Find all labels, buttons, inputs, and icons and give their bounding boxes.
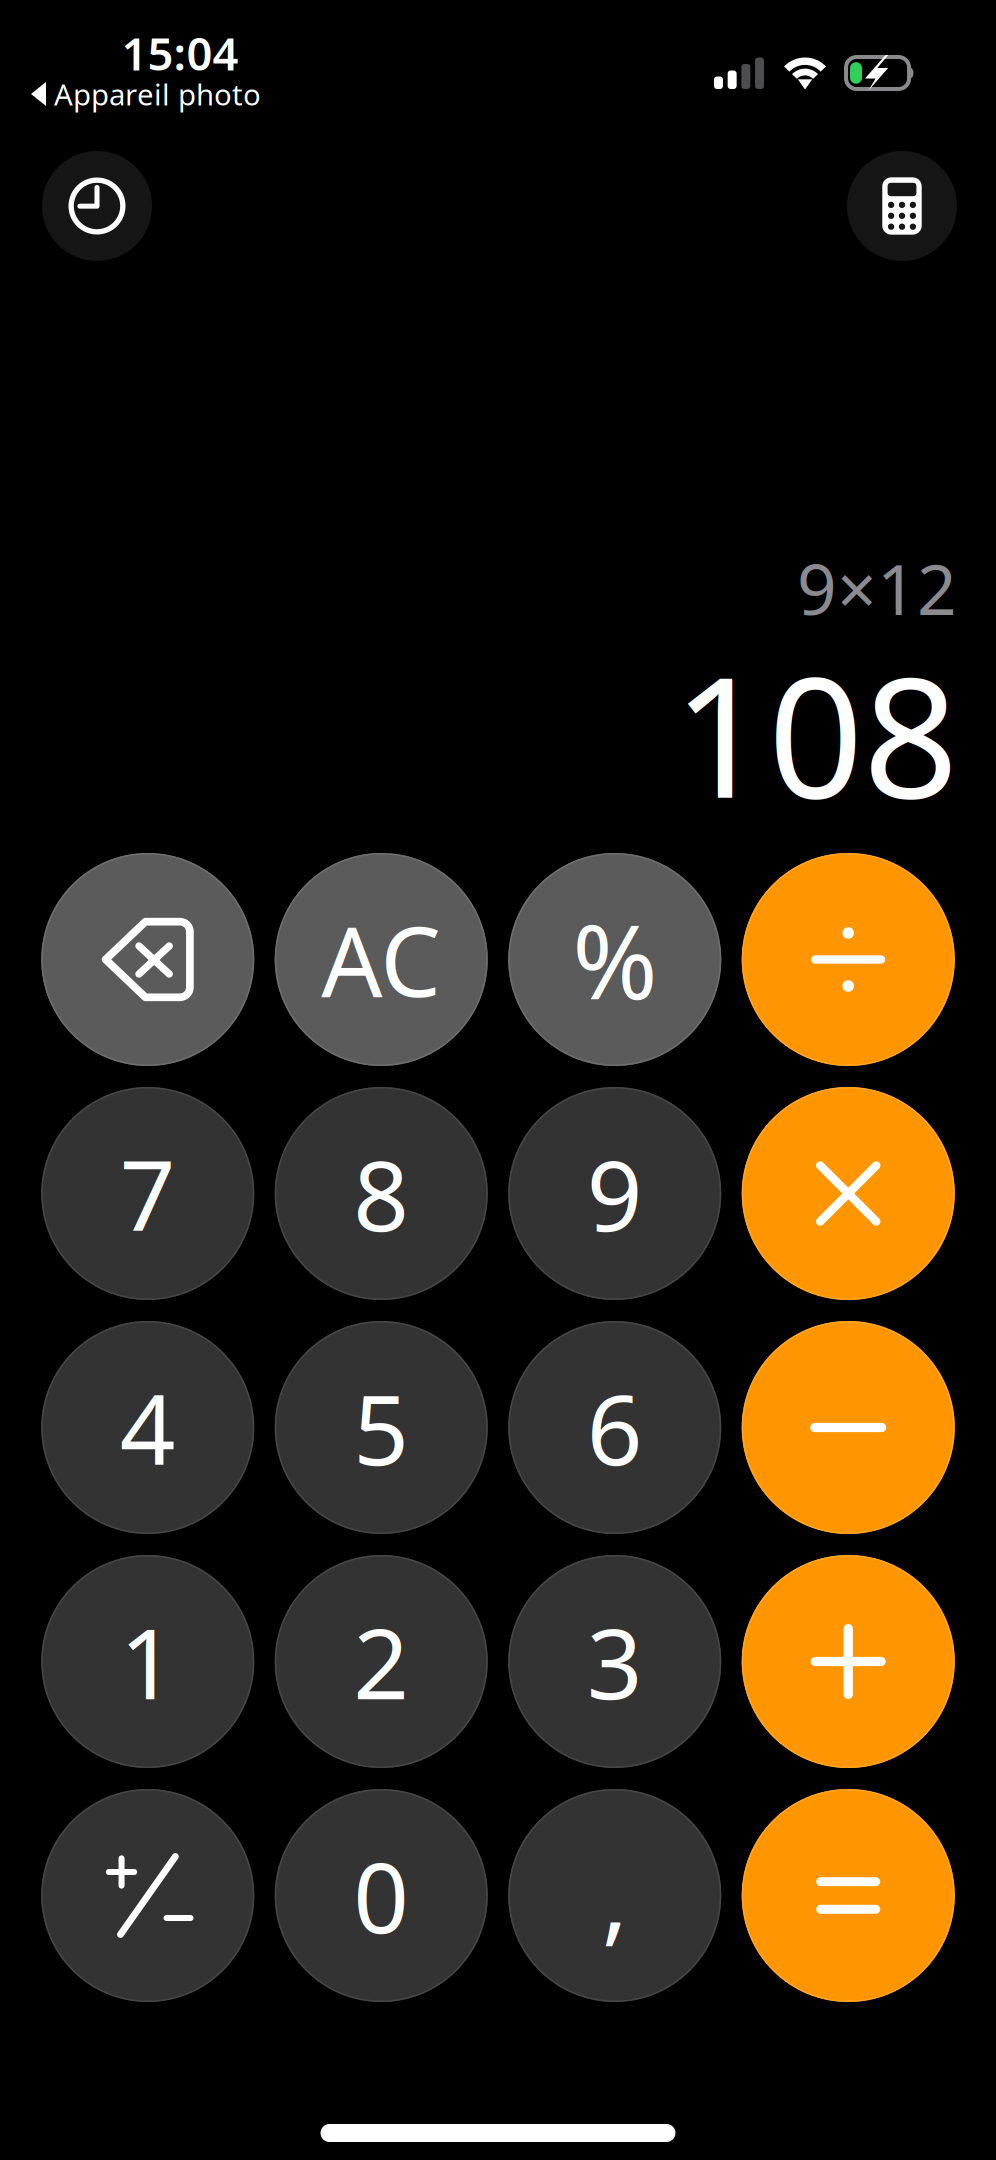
staticText: ,	[602, 1831, 628, 1960]
staticText: 5	[353, 1363, 409, 1492]
staticText: 7	[120, 1129, 176, 1258]
button[interactable]: Delete	[41, 853, 254, 1066]
button[interactable]: Calculator keypad	[847, 151, 957, 261]
button[interactable]: History	[42, 151, 152, 261]
staticText: 6	[587, 1363, 643, 1492]
button[interactable]: Subtract	[742, 1321, 955, 1534]
button[interactable]: 4	[41, 1321, 254, 1534]
staticText: 1	[120, 1597, 176, 1726]
staticText: 15:04	[121, 23, 238, 83]
staticText: AC	[321, 896, 441, 1023]
staticText: 0	[353, 1831, 409, 1960]
button[interactable]: 1	[41, 1555, 254, 1768]
button[interactable]: 9	[508, 1087, 721, 1300]
staticText: 3	[587, 1597, 643, 1726]
button[interactable]: Equals	[742, 1789, 955, 2002]
button[interactable]: Add	[742, 1555, 955, 1768]
button[interactable]: 7	[41, 1087, 254, 1300]
button[interactable]: Divide	[742, 853, 955, 1066]
button[interactable]: 6	[508, 1321, 721, 1534]
button[interactable]: AC	[275, 853, 488, 1066]
staticText: 2	[353, 1597, 409, 1726]
button[interactable]: 2	[275, 1555, 488, 1768]
button[interactable]: Appareil photo	[31, 72, 261, 115]
button[interactable]: Toggle sign	[41, 1789, 254, 2002]
staticText: 108	[673, 622, 958, 844]
staticText: 9	[587, 1129, 643, 1258]
staticText: 4	[120, 1363, 176, 1492]
button[interactable]: ,	[508, 1789, 721, 2002]
staticText: %	[572, 891, 657, 1028]
button[interactable]: 8	[275, 1087, 488, 1300]
staticText: 8	[353, 1129, 409, 1258]
button[interactable]: Multiply	[742, 1087, 955, 1300]
button[interactable]: 3	[508, 1555, 721, 1768]
button[interactable]: %	[508, 853, 721, 1066]
staticText: Appareil photo	[54, 74, 261, 113]
staticText: 9×12	[797, 542, 957, 634]
button[interactable]: 0	[275, 1789, 488, 2002]
button[interactable]: 5	[275, 1321, 488, 1534]
